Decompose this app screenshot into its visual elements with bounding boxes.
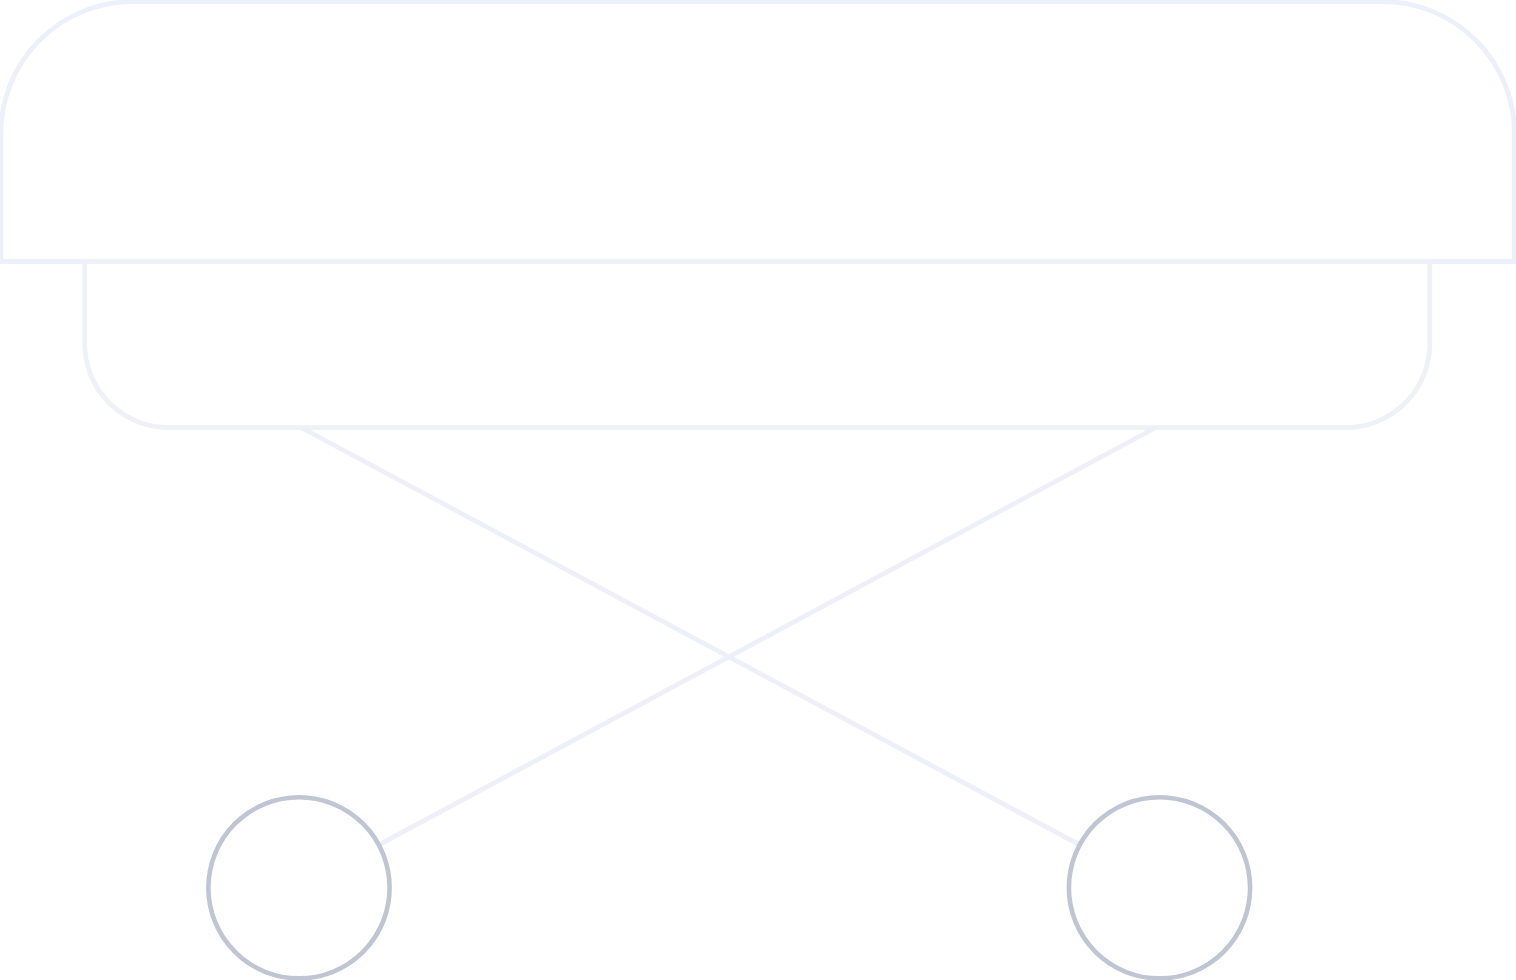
other: Trolley illustration: [0, 0, 1516, 980]
